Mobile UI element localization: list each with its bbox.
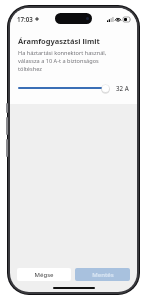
staticText: 32 A — [116, 84, 129, 92]
button[interactable]: Áramerősség csúszka — [18, 81, 111, 95]
staticText: Mentés — [92, 271, 114, 279]
staticText: 17:03 — [17, 15, 33, 23]
button[interactable]: Mégse — [17, 268, 71, 281]
staticText: Áramfogyasztási limit — [18, 36, 100, 46]
button[interactable]: Mentés — [75, 268, 130, 281]
staticText: Mégse — [34, 271, 54, 279]
staticText: Ha háztartási konnektort használ, válass… — [18, 49, 107, 73]
